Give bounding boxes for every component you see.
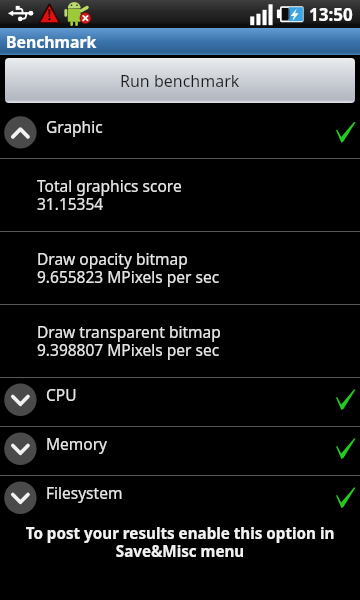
staticText: Draw opacity bitmap 9.655823 MPixels per… (37, 248, 220, 288)
button[interactable]: Draw opacity bitmap 9.655823 MPixels per… (0, 232, 360, 304)
staticText: Filesystem (46, 482, 123, 503)
button[interactable]: Draw transparent bitmap 9.398807 MPixels… (0, 305, 360, 377)
staticText: CPU (46, 384, 77, 405)
button[interactable]: Expand CPU (0, 378, 360, 426)
button[interactable]: Run benchmark (5, 58, 355, 103)
staticText: Benchmark (6, 31, 97, 53)
button[interactable]: Expand Filesystem (0, 476, 360, 524)
button[interactable]: Total graphics score 31.15354 (0, 159, 360, 231)
button[interactable]: Collapse Graphic (0, 104, 360, 158)
staticText: Graphic (46, 116, 103, 137)
staticText: Run benchmark (120, 70, 240, 92)
button[interactable]: Expand Memory (0, 427, 360, 475)
staticText: Total graphics score 31.15354 (37, 175, 182, 215)
staticText: Memory (46, 433, 107, 454)
staticText: Draw transparent bitmap 9.398807 MPixels… (37, 321, 221, 361)
staticText: To post your results enable this option … (0, 523, 360, 561)
staticText: 13:50 (309, 3, 353, 26)
